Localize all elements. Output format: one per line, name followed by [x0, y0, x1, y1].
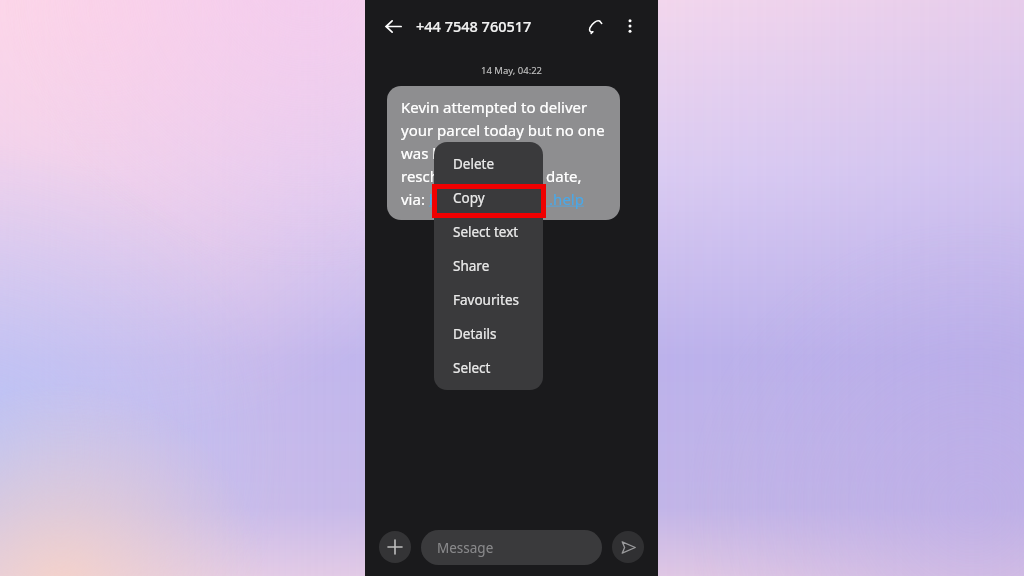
button[interactable]: Add attachment	[379, 531, 411, 563]
staticText: Favourites	[453, 291, 519, 309]
staticText: Select text	[453, 223, 519, 241]
staticText: Delete	[453, 155, 495, 173]
staticText: Kevin attempted to deliver your parcel t…	[401, 97, 606, 209]
staticText: Details	[453, 325, 497, 343]
staticText: +44 7548 760517	[416, 16, 532, 36]
staticText: Select	[453, 359, 491, 377]
staticText: Share	[453, 257, 490, 275]
button[interactable]: Delete	[434, 147, 543, 181]
button[interactable]: Kevin attempted to deliver your parcel t…	[387, 86, 620, 220]
button[interactable]: More options	[613, 9, 647, 43]
staticText: Message	[437, 539, 494, 557]
button[interactable]: Message	[421, 530, 602, 565]
button[interactable]: Share	[434, 249, 543, 283]
button[interactable]: Copy	[434, 181, 543, 215]
button[interactable]: Select	[434, 351, 543, 385]
button[interactable]: Back	[378, 11, 408, 41]
staticText: 14 May, 04:22	[481, 64, 543, 77]
button[interactable]: Details	[434, 317, 543, 351]
staticText: Copy	[453, 189, 485, 207]
button[interactable]: Select text	[434, 215, 543, 249]
button[interactable]: Call	[578, 9, 612, 43]
button[interactable]: Favourites	[434, 283, 543, 317]
button[interactable]: Send	[612, 531, 644, 563]
